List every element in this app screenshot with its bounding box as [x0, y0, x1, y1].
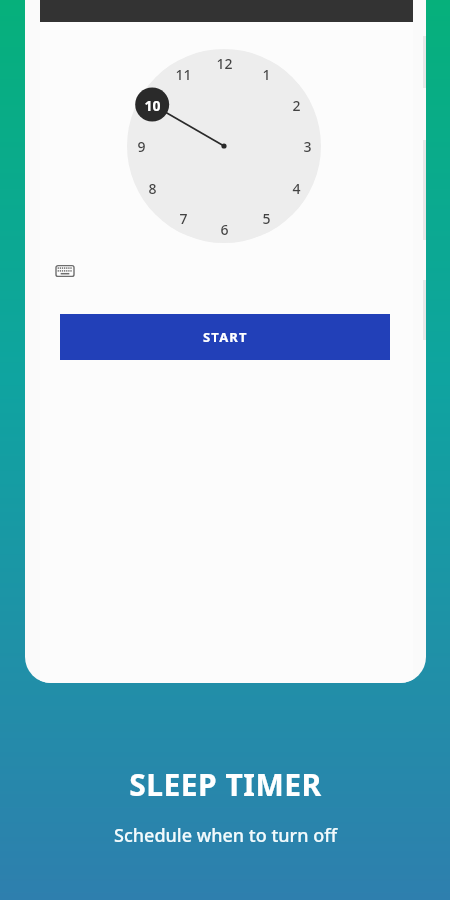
staticText: START	[203, 328, 248, 346]
staticText: 4	[292, 179, 301, 198]
staticText: 7	[179, 209, 188, 228]
staticText: 11	[175, 65, 192, 84]
staticText: 1	[262, 65, 271, 84]
staticText: 9	[137, 137, 146, 156]
button[interactable]: Switch to text input	[52, 258, 78, 284]
staticText: 10	[144, 96, 161, 115]
staticText: 8	[148, 179, 157, 198]
button[interactable]: Clock time picker, 10 o'clock	[127, 49, 321, 243]
button[interactable]: START	[60, 314, 390, 360]
staticText: 3	[303, 137, 312, 156]
staticText: 5	[262, 209, 271, 228]
staticText: SLEEP TIMER	[129, 764, 322, 805]
staticText: 2	[292, 96, 301, 115]
staticText: 12	[216, 54, 233, 73]
staticText: Schedule when to turn off	[114, 823, 337, 848]
staticText: 6	[220, 220, 229, 239]
